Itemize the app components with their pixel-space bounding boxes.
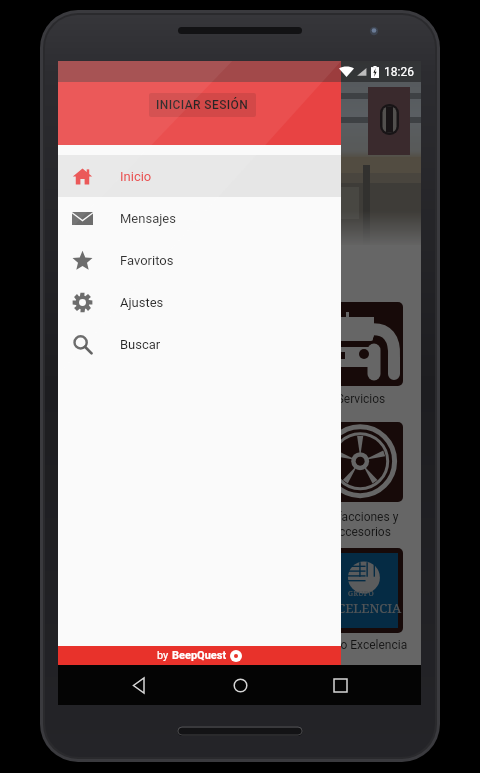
button[interactable]: Inicio (58, 155, 341, 197)
button[interactable]: Mensajes (58, 197, 341, 239)
staticText: GRUPO (319, 589, 403, 599)
staticText: INICIAR SESIÓN (156, 98, 249, 112)
staticText: Mensajes (120, 211, 176, 226)
button[interactable]: Recent apps (320, 665, 360, 705)
button[interactable]: INICIAR SESIÓN (149, 93, 256, 117)
staticText: BeepQuest (172, 649, 227, 662)
button[interactable]: Home (220, 665, 260, 705)
staticText: Buscar (120, 337, 161, 352)
button[interactable]: Ajustes (58, 281, 341, 323)
staticText: EXCELENCIA (319, 599, 403, 617)
staticText: Ajustes (120, 295, 164, 310)
staticText: Servicios (298, 392, 424, 406)
staticText: 18:26 (384, 65, 414, 79)
button[interactable]: Buscar (58, 323, 341, 365)
staticText: Refacciones y Accesorios (298, 510, 424, 539)
staticText: Favoritos (120, 253, 174, 268)
staticText: Grupo Excelencia (298, 638, 424, 652)
button[interactable]: Favoritos (58, 239, 341, 281)
staticText: by (157, 649, 172, 662)
staticText: Inicio (120, 169, 152, 184)
button[interactable]: Back (119, 665, 159, 705)
button[interactable]: by (58, 646, 341, 665)
